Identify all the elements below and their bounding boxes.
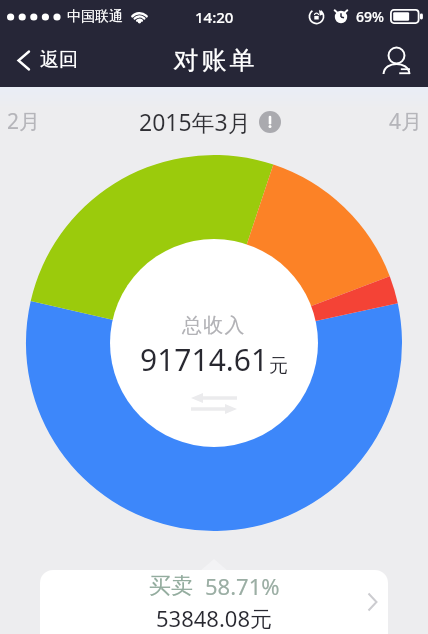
button[interactable]: 4月 <box>369 97 428 146</box>
staticText: 中国联通 <box>67 8 123 26</box>
staticText: 53848.08元 <box>156 603 272 633</box>
staticText: 返回 <box>40 48 78 72</box>
staticText: 91714.61 <box>140 339 269 380</box>
staticText: 元 <box>269 354 288 378</box>
staticText: 总收入 <box>182 313 246 338</box>
staticText: 14:20 <box>195 7 234 27</box>
button[interactable]: 返回 <box>0 39 94 81</box>
staticText: 2015年3月 <box>139 106 251 137</box>
staticText: 买卖 <box>149 572 193 600</box>
staticText: 58.71% <box>205 571 280 601</box>
button[interactable]: Account <box>367 36 428 85</box>
button[interactable]: 2015年3月 <box>133 100 287 143</box>
staticText: 对账单 <box>172 45 256 76</box>
staticText: 69% <box>356 7 384 26</box>
button[interactable]: 2月 <box>0 97 61 146</box>
button[interactable]: 买卖 <box>40 570 388 634</box>
